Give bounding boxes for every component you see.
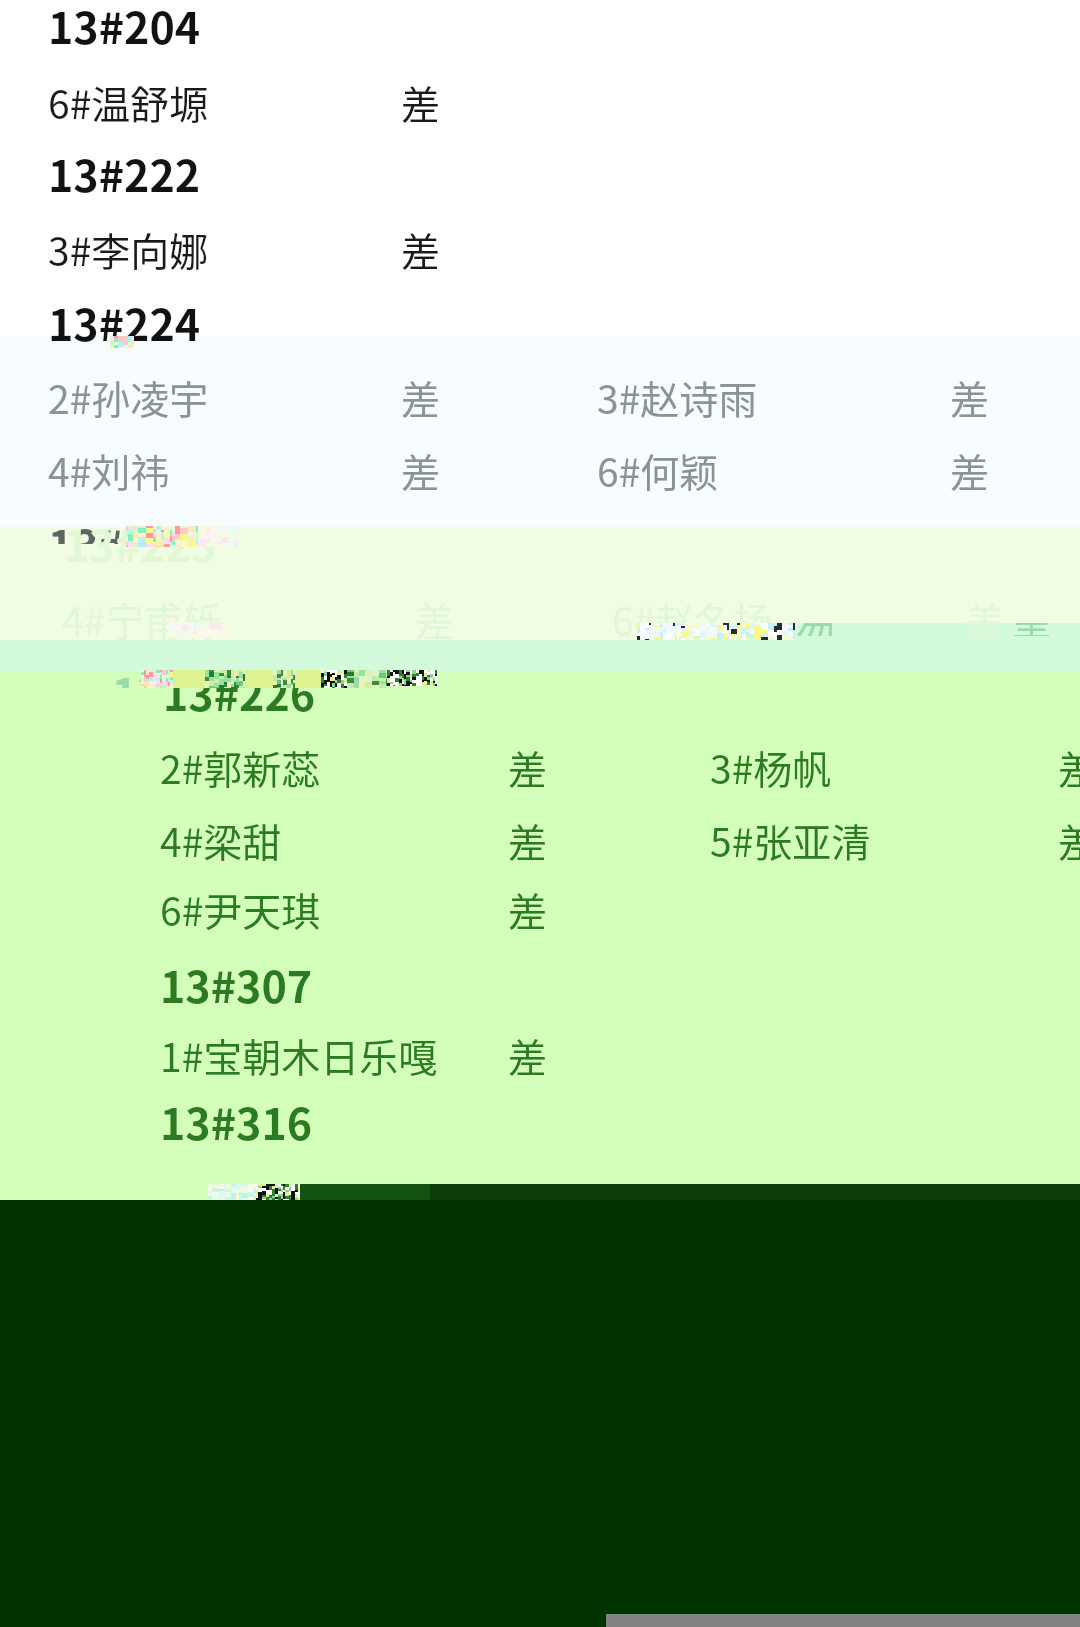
staticText: 差	[1012, 605, 1052, 661]
staticText: 2#郭新蕊	[160, 739, 321, 795]
button[interactable]: 6#赵名扬	[612, 591, 773, 647]
staticText: 5#张亚清	[710, 812, 871, 868]
button[interactable]: 差	[508, 881, 548, 937]
staticText: 3#赵诗雨	[597, 369, 758, 425]
button[interactable]: 勿	[796, 605, 836, 661]
button[interactable]: 5#张亚清	[710, 812, 871, 868]
button[interactable]: 1#宝朝木日乐嘎	[160, 1027, 438, 1083]
button[interactable]: 差	[1058, 812, 1080, 868]
staticText: 6#温舒塬	[48, 74, 209, 130]
staticText: 6#尹天琪	[160, 881, 321, 937]
staticText: 差	[950, 369, 990, 425]
button[interactable]: 4#刘祎	[48, 442, 170, 498]
staticText: 1#宝朝木日乐嘎	[160, 1027, 438, 1083]
staticText: 差	[415, 591, 455, 647]
staticText: 4#刘祎	[48, 442, 170, 498]
button[interactable]: 2#孙凌宇	[48, 369, 209, 425]
button[interactable]: 3#李向娜	[48, 221, 209, 277]
button[interactable]: 3#赵诗雨	[597, 369, 758, 425]
button[interactable]: 差	[401, 369, 441, 425]
button[interactable]: 差	[401, 221, 441, 277]
button[interactable]: 13#307	[160, 953, 313, 1015]
button[interactable]: 2#郭新蕊	[160, 739, 321, 795]
staticText: 差	[401, 369, 441, 425]
button[interactable]: 13#226	[163, 661, 316, 723]
staticText: 13#316	[160, 1090, 313, 1152]
button[interactable]: 差	[965, 591, 1005, 647]
staticText: 2#孙凌宇	[48, 369, 209, 425]
button[interactable]: 13#204	[48, 0, 201, 56]
button[interactable]: 3#杨帆	[710, 739, 832, 795]
staticText: 差	[508, 812, 548, 868]
staticText: 13#225	[64, 512, 217, 574]
staticText: 6#何颖	[597, 442, 719, 498]
staticText: 差	[1058, 739, 1080, 795]
button[interactable]: 差	[401, 74, 441, 130]
staticText: 13#307	[160, 953, 313, 1015]
staticText: 差	[508, 739, 548, 795]
staticText: 3#杨帆	[710, 739, 832, 795]
button[interactable]: 差	[950, 369, 990, 425]
staticText: 差	[401, 221, 441, 277]
staticText: 差	[508, 881, 548, 937]
button[interactable]: 差	[508, 1027, 548, 1083]
staticText: 3#李向娜	[48, 221, 209, 277]
staticText: 6#赵名扬	[612, 591, 773, 647]
button[interactable]: 差	[401, 442, 441, 498]
staticText: 13#204	[48, 0, 201, 56]
staticText: 13#224	[48, 291, 201, 353]
staticText: 13#222	[48, 142, 201, 204]
button[interactable]: 13#227	[112, 660, 265, 722]
button[interactable]: 13#224	[48, 291, 201, 353]
button[interactable]: 13#225	[64, 512, 217, 574]
staticText: 差	[508, 1027, 548, 1083]
button[interactable]: 4#宁甫轹	[62, 591, 223, 647]
staticText: 差	[965, 591, 1005, 647]
button[interactable]: 13#316	[160, 1090, 313, 1152]
staticText: 差	[401, 442, 441, 498]
button[interactable]: 4#梁甜	[160, 812, 282, 868]
button[interactable]: 6#温舒塬	[48, 74, 209, 130]
button[interactable]: 13#225	[48, 512, 201, 574]
staticText: 13#225	[48, 512, 201, 574]
staticText: 13#226	[163, 661, 316, 723]
staticText: 4#宁甫轹	[62, 591, 223, 647]
staticText: 勿	[796, 605, 836, 661]
staticText: 13#227	[112, 660, 265, 722]
staticText: 差	[401, 74, 441, 130]
button[interactable]: 差	[950, 442, 990, 498]
button[interactable]: 差	[415, 591, 455, 647]
staticText: 差	[1058, 812, 1080, 868]
button[interactable]: 差	[1058, 739, 1080, 795]
button[interactable]: 6#何颖	[597, 442, 719, 498]
button[interactable]: 13#222	[48, 142, 201, 204]
button[interactable]: 差	[1012, 605, 1052, 661]
button[interactable]: 6#尹天琪	[160, 881, 321, 937]
button[interactable]: 差	[508, 739, 548, 795]
staticText: 4#梁甜	[160, 812, 282, 868]
button[interactable]: 差	[508, 812, 548, 868]
staticText: 差	[950, 442, 990, 498]
